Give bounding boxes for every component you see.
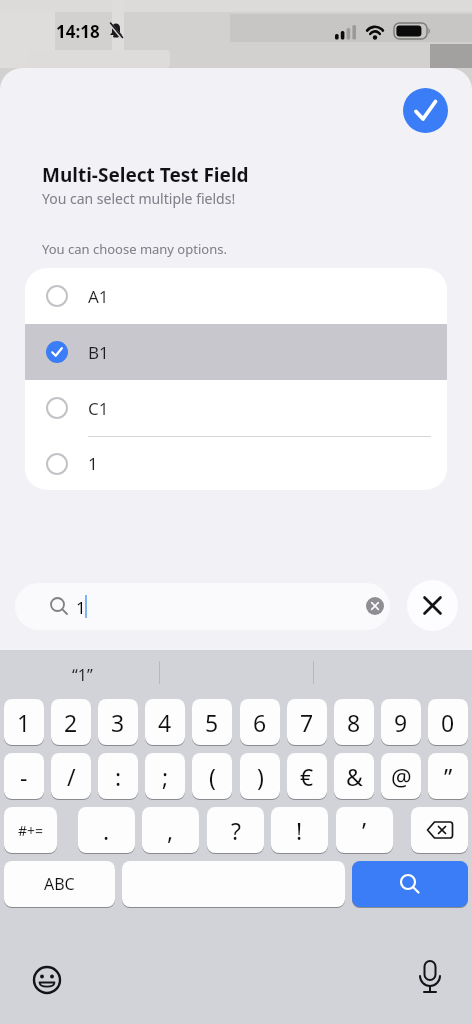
staticText: € (300, 761, 314, 792)
staticText: B1 (88, 341, 109, 364)
button[interactable]: 5 (192, 699, 232, 745)
staticText: : (115, 761, 122, 792)
button[interactable] (407, 580, 458, 631)
staticText: 1 (76, 596, 86, 619)
button[interactable]: , (142, 807, 199, 853)
button[interactable] (411, 807, 468, 853)
button[interactable]: 6 (240, 699, 280, 745)
button[interactable]: ) (240, 753, 280, 799)
staticText: 0 (441, 707, 455, 738)
button[interactable]: 0 (428, 699, 468, 745)
staticText: @ (391, 761, 412, 792)
staticText: A1 (88, 285, 109, 308)
staticText: ? (231, 815, 241, 846)
button[interactable]: 4 (145, 699, 185, 745)
staticText: C1 (88, 397, 109, 420)
button[interactable]: . (78, 807, 135, 853)
button[interactable] (403, 88, 448, 133)
staticText: 9 (394, 707, 408, 738)
staticText: “1” (72, 664, 93, 686)
staticText: ! (296, 815, 303, 846)
button[interactable]: 2 (51, 699, 91, 745)
staticText: , (167, 815, 174, 846)
staticText: ’ (362, 815, 367, 846)
staticText: 5 (205, 707, 219, 738)
button[interactable]: 3 (98, 699, 138, 745)
button[interactable]: 1 (15, 583, 390, 630)
button[interactable]: @ (381, 753, 421, 799)
button[interactable]: ABC (4, 861, 115, 907)
button[interactable]: C1 (25, 380, 447, 436)
button[interactable]: 1 (4, 699, 44, 745)
staticText: 3 (111, 707, 125, 738)
button[interactable]: - (4, 753, 44, 799)
button[interactable]: 1 (25, 437, 447, 490)
staticText: 8 (347, 707, 361, 738)
staticText: 14:18 (56, 20, 100, 43)
staticText: . (103, 815, 110, 846)
staticText: - (20, 761, 28, 792)
button[interactable] (414, 958, 446, 1000)
staticText: ABC (44, 873, 75, 895)
button[interactable] (30, 963, 64, 997)
button[interactable]: ( (192, 753, 232, 799)
staticText: #+= (18, 821, 44, 840)
button[interactable]: 8 (334, 699, 374, 745)
button[interactable] (352, 861, 468, 907)
staticText: 4 (158, 707, 172, 738)
button[interactable]: ? (207, 807, 264, 853)
button[interactable]: ; (145, 753, 185, 799)
button[interactable]: & (334, 753, 374, 799)
button[interactable]: / (51, 753, 91, 799)
staticText: 7 (300, 707, 314, 738)
button[interactable]: 7 (287, 699, 327, 745)
button[interactable]: : (98, 753, 138, 799)
staticText: Multi-Select Test Field (42, 162, 249, 188)
staticText: / (67, 761, 76, 792)
staticText: 6 (253, 707, 267, 738)
button[interactable]: ’ (336, 807, 393, 853)
staticText: 1 (88, 452, 98, 475)
staticText: ” (444, 761, 453, 792)
button[interactable]: € (287, 753, 327, 799)
staticText: You can select multiple fields! (42, 189, 236, 208)
staticText: ) (257, 761, 264, 792)
button[interactable]: 9 (381, 699, 421, 745)
staticText: ( (209, 761, 216, 792)
staticText: You can choose many options. (42, 240, 227, 258)
button[interactable]: A1 (25, 268, 447, 324)
staticText: & (346, 761, 363, 792)
staticText: 1 (17, 707, 31, 738)
staticText: 2 (64, 707, 78, 738)
button[interactable]: ! (271, 807, 328, 853)
staticText: ; (162, 761, 169, 792)
button[interactable] (122, 861, 345, 907)
button[interactable]: ” (428, 753, 468, 799)
button[interactable]: #+= (4, 807, 57, 853)
button[interactable]: B1 (25, 324, 447, 380)
